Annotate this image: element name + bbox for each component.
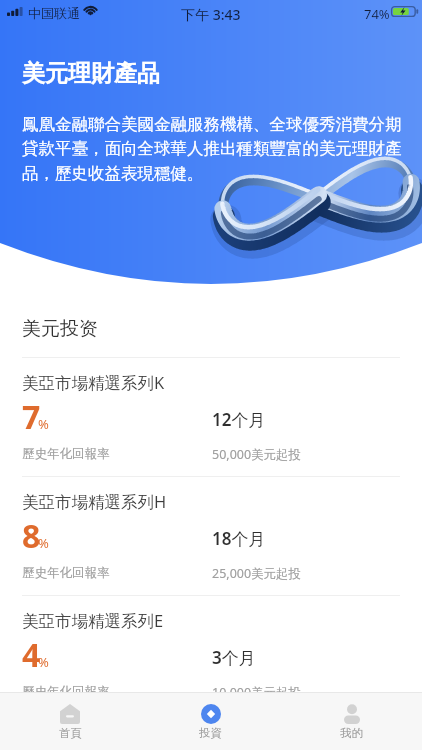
button[interactable]: 美亞市場精選系列K (0, 358, 422, 476)
staticText: 74% (364, 5, 390, 23)
staticText: 我的 (340, 726, 363, 740)
other: Invest (201, 704, 221, 724)
staticText: 鳳凰金融聯合美國金融服務機構、全球優秀消費分期貸款平臺，面向全球華人推出種類豐富… (22, 114, 416, 184)
staticText: 歷史年化回報率 (22, 446, 110, 462)
staticText: 25,000美元起投 (212, 565, 302, 582)
staticText: 美元投资 (22, 317, 98, 341)
button[interactable]: 美亞市場精選系列H (0, 477, 422, 595)
button[interactable]: Invest (140, 693, 281, 740)
staticText: 18个月 (212, 527, 266, 550)
other: Home (60, 704, 80, 724)
staticText: % (38, 653, 49, 671)
staticText: 歷史年化回報率 (22, 684, 110, 700)
button[interactable]: 美亞市場精選系列E (0, 596, 422, 714)
staticText: 歷史年化回報率 (22, 565, 110, 581)
staticText: 50,000美元起投 (212, 446, 302, 463)
button[interactable]: Home (0, 693, 140, 740)
staticText: 美亞市場精選系列H (22, 490, 167, 513)
staticText: 3个月 (212, 646, 256, 669)
staticText: 下午 3:43 (181, 5, 241, 24)
staticText: 首頁 (59, 726, 82, 740)
staticText: 12个月 (212, 408, 266, 431)
other: Profile (342, 704, 362, 724)
staticText: 投資 (199, 726, 222, 740)
staticText: 美元理財產品 (22, 59, 160, 88)
staticText: 8 (22, 514, 41, 558)
button[interactable]: Profile (281, 693, 422, 740)
staticText: 10,000美元起投 (212, 684, 302, 701)
staticText: % (38, 415, 49, 433)
staticText: % (38, 534, 49, 552)
staticText: 7 (22, 395, 41, 439)
staticText: 4 (22, 633, 41, 677)
staticText: 美亞市場精選系列E (22, 609, 164, 632)
staticText: 美亞市場精選系列K (22, 371, 165, 394)
staticText: 中国联通 (28, 5, 80, 21)
